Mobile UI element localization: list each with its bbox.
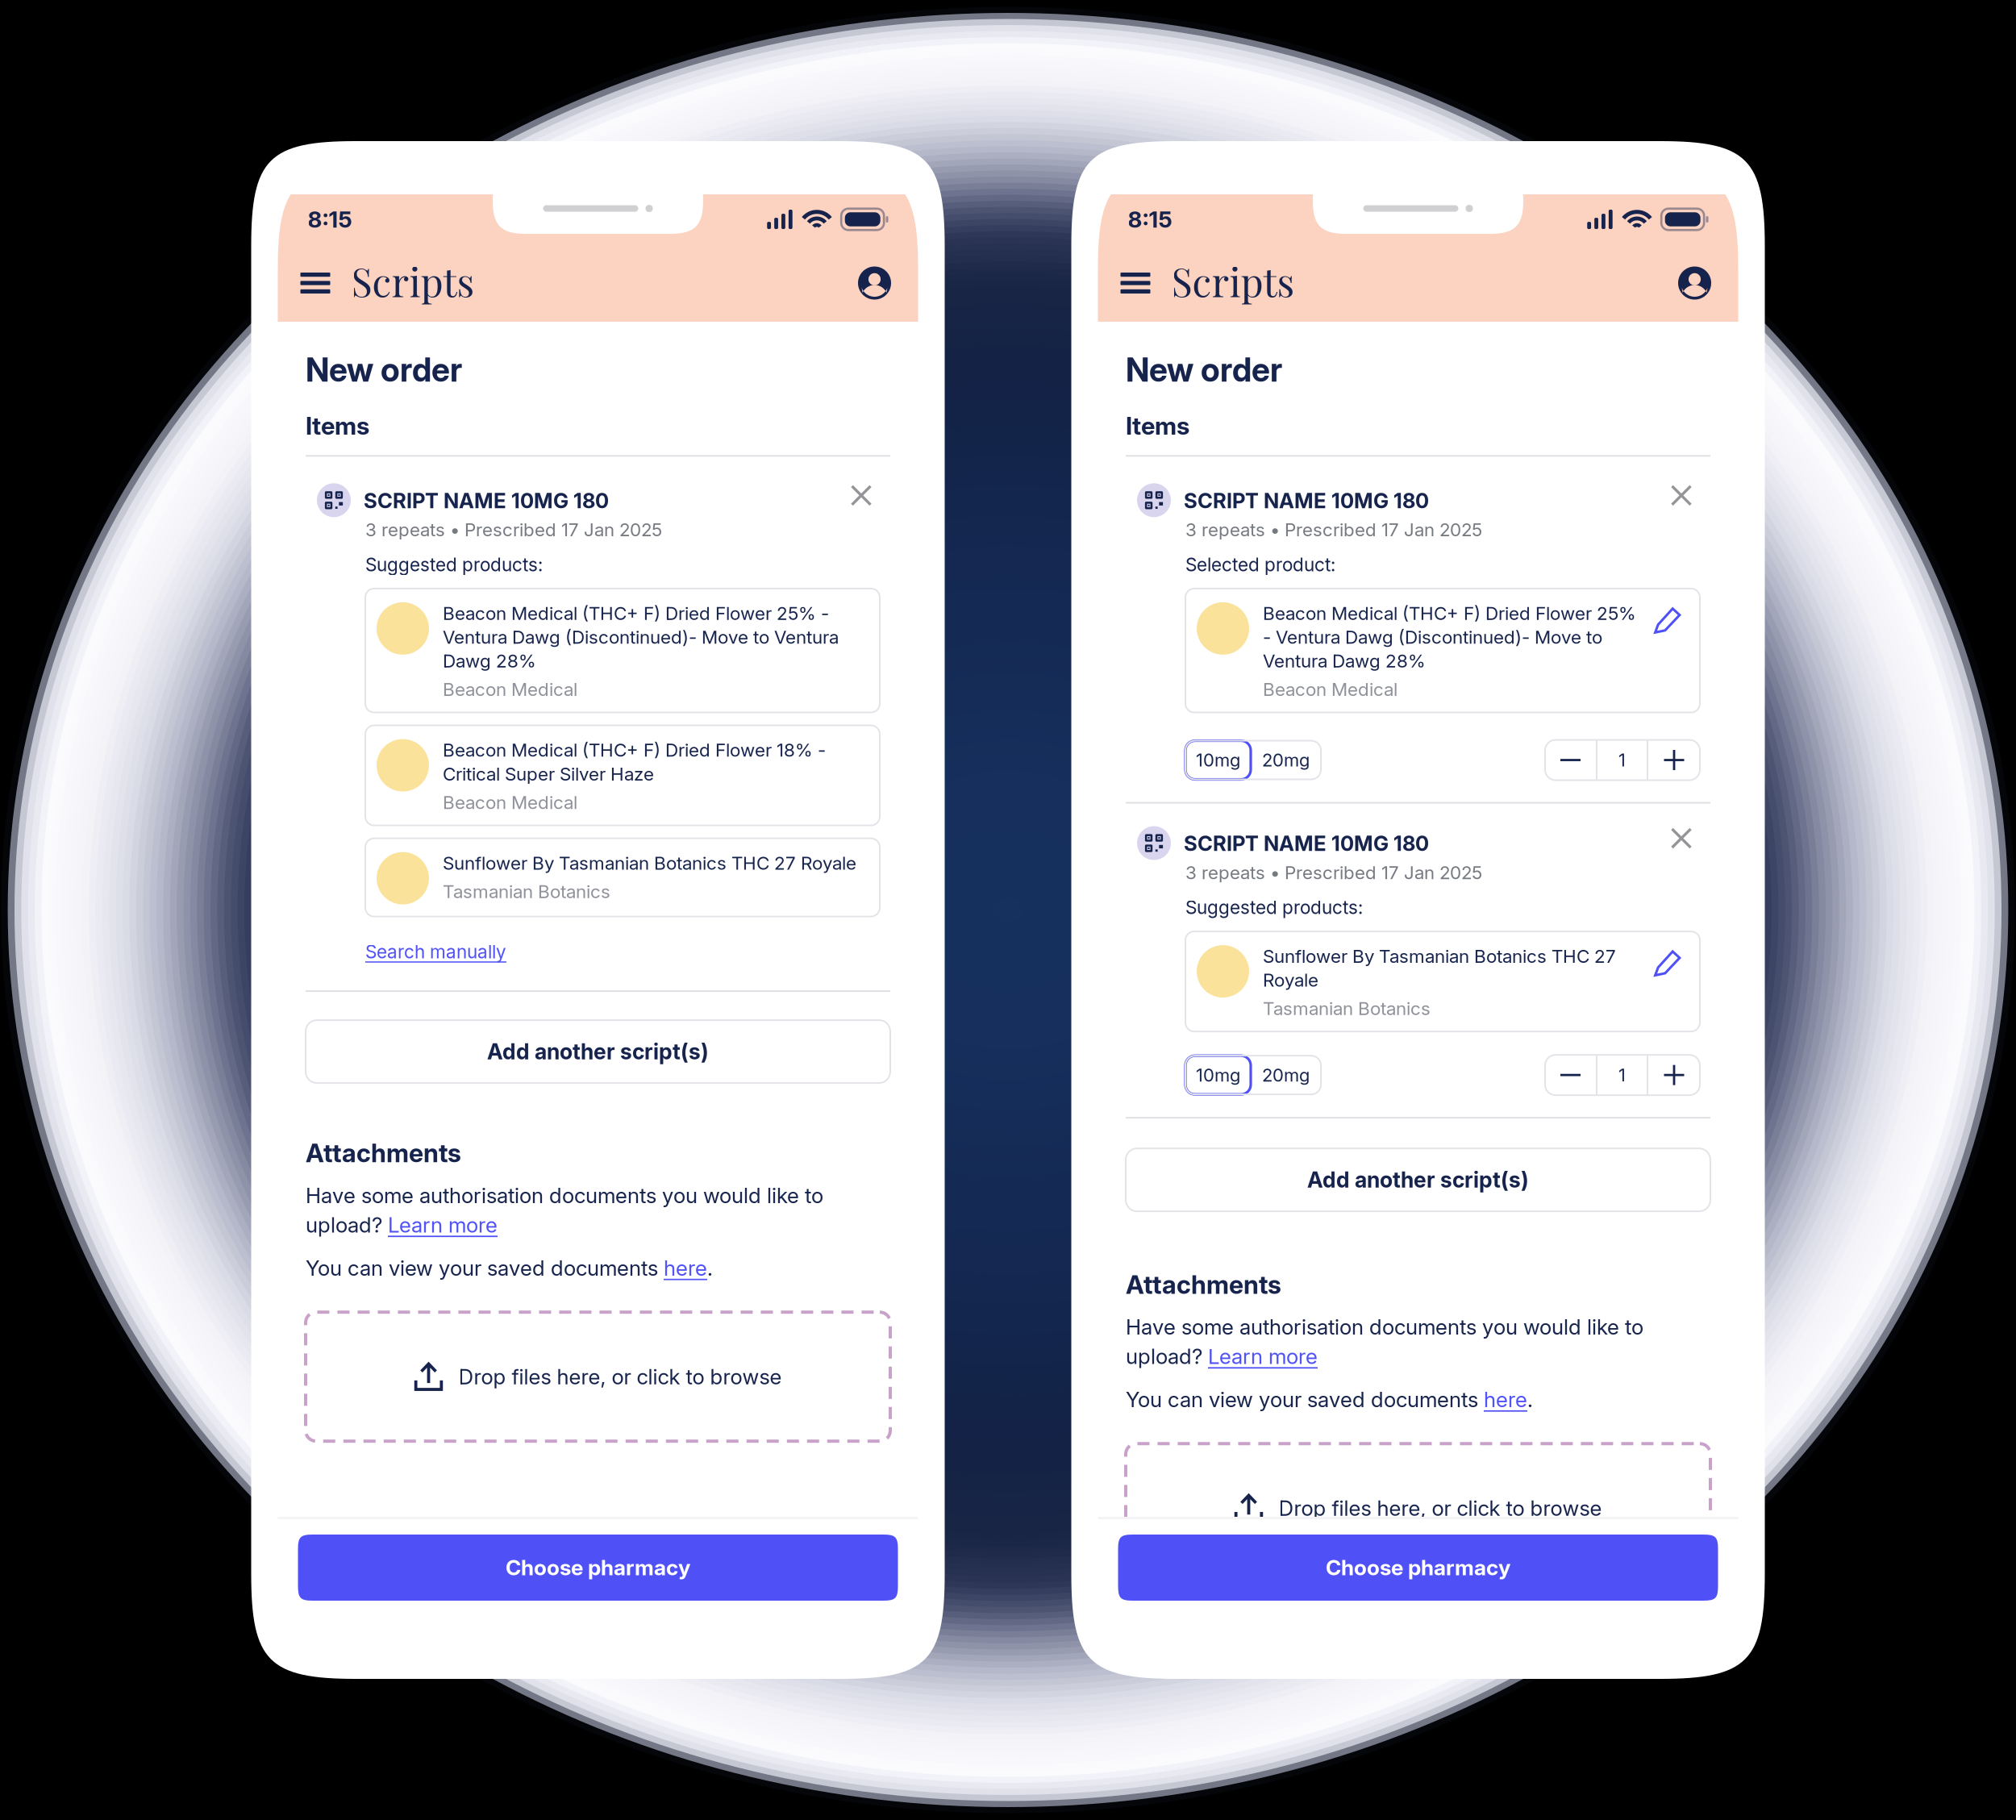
staticText: Scripts xyxy=(1171,255,1295,307)
staticText: Add another script(s) xyxy=(487,1039,709,1065)
button[interactable]: 20mg xyxy=(1251,741,1321,779)
button[interactable]: Add another script(s) xyxy=(1126,1148,1710,1211)
staticText: Attachments xyxy=(1126,1269,1281,1300)
button[interactable]: Change product xyxy=(1648,945,1685,982)
staticText: Learn more xyxy=(1208,1344,1318,1369)
staticText: Add another script(s) xyxy=(1307,1167,1529,1193)
staticText: 20mg xyxy=(1262,749,1310,771)
staticText: 10mg xyxy=(1196,749,1240,771)
staticText: 1 xyxy=(1618,749,1626,771)
button[interactable]: 10mg xyxy=(1185,1056,1251,1094)
staticText: Beacon Medical (THC+ F) Dried Flower 18%… xyxy=(443,739,826,785)
staticText: upload? xyxy=(306,1212,388,1238)
button[interactable]: Add another script(s) xyxy=(306,1020,890,1083)
staticText: Suggested products: xyxy=(1185,896,1363,918)
button[interactable]: Drop files here, or click to browse xyxy=(1126,1444,1710,1573)
staticText: Selected product: xyxy=(1185,553,1335,576)
staticText: Beacon Medical xyxy=(443,791,577,813)
staticText: 3 repeats • Prescribed 17 Jan 2025 xyxy=(365,519,662,541)
button[interactable]: Increase quantity xyxy=(1648,740,1700,780)
staticText: Drop files here, or click to browse xyxy=(458,1364,782,1389)
button[interactable]: Choose pharmacy xyxy=(298,1535,898,1601)
button[interactable]: Choose pharmacy xyxy=(1118,1535,1718,1601)
staticText: 10mg xyxy=(1196,1064,1240,1086)
staticText: 20mg xyxy=(1262,1064,1310,1086)
button[interactable]: Menu xyxy=(293,257,337,309)
button[interactable]: Change product xyxy=(1648,602,1685,639)
staticText: New order xyxy=(1126,350,1282,389)
staticText: Sunflower By Tasmanian Botanics THC 27 R… xyxy=(443,852,856,874)
staticText: Items xyxy=(1126,411,1189,441)
staticText: Beacon Medical xyxy=(443,678,577,700)
button[interactable]: Account xyxy=(851,260,898,306)
button[interactable]: Increase quantity xyxy=(1648,1055,1700,1095)
staticText: Beacon Medical (THC+ F) Dried Flower 25%… xyxy=(1263,602,1636,672)
button[interactable]: here xyxy=(1484,1387,1527,1412)
staticText: Tasmanian Botanics xyxy=(1263,997,1431,1019)
button[interactable]: 10mg xyxy=(1185,741,1251,779)
staticText: SCRIPT NAME 10MG 180 xyxy=(1184,831,1429,856)
button[interactable]: Remove script xyxy=(842,476,881,515)
button[interactable]: Remove script xyxy=(1662,476,1701,515)
staticText: 3 repeats • Prescribed 17 Jan 2025 xyxy=(1185,862,1482,883)
staticText: . xyxy=(707,1255,713,1281)
button[interactable]: Decrease quantity xyxy=(1545,740,1596,780)
button[interactable]: 20mg xyxy=(1251,1056,1321,1094)
staticText: Scripts xyxy=(351,255,475,307)
staticText: Beacon Medical (THC+ F) Dried Flower 25%… xyxy=(443,602,839,672)
button[interactable]: Decrease quantity xyxy=(1545,1055,1596,1095)
button[interactable]: Learn more xyxy=(1208,1344,1318,1369)
staticText: SCRIPT NAME 10MG 180 xyxy=(364,488,609,513)
staticText: SCRIPT NAME 10MG 180 xyxy=(1184,488,1429,513)
staticText: 8:15 xyxy=(308,206,352,233)
staticText: 3 repeats • Prescribed 17 Jan 2025 xyxy=(1185,519,1482,541)
button[interactable]: Remove script xyxy=(1662,819,1701,858)
button[interactable]: Drop files here, or click to browse xyxy=(306,1312,890,1441)
staticText: Items xyxy=(306,411,369,441)
staticText: New order xyxy=(306,350,462,389)
staticText: here xyxy=(664,1255,707,1281)
staticText: You can view your saved documents xyxy=(1126,1387,1484,1412)
staticText: Tasmanian Botanics xyxy=(443,880,610,903)
button[interactable]: Learn more xyxy=(388,1212,498,1238)
button[interactable]: Account xyxy=(1671,260,1718,306)
staticText: Sunflower By Tasmanian Botanics THC 27 R… xyxy=(1263,945,1616,991)
staticText: Have some authorisation documents you wo… xyxy=(306,1183,823,1208)
staticText: Choose pharmacy xyxy=(506,1555,690,1580)
staticText: Search manually xyxy=(365,941,506,963)
button[interactable]: Search manually xyxy=(365,941,506,963)
staticText: Beacon Medical xyxy=(1263,678,1397,700)
staticText: Choose pharmacy xyxy=(1326,1555,1510,1580)
staticText: Drop files here, or click to browse xyxy=(1279,1496,1602,1521)
button[interactable]: here xyxy=(664,1255,707,1281)
staticText: 1 xyxy=(1618,1064,1626,1086)
staticText: Suggested products: xyxy=(365,553,543,576)
staticText: here xyxy=(1484,1387,1527,1412)
button[interactable]: Menu xyxy=(1113,257,1158,309)
staticText: You can view your saved documents xyxy=(306,1255,664,1281)
staticText: upload? xyxy=(1126,1344,1208,1369)
staticText: Attachments xyxy=(306,1138,461,1168)
staticText: Learn more xyxy=(388,1212,498,1238)
staticText: 8:15 xyxy=(1128,206,1172,233)
staticText: Have some authorisation documents you wo… xyxy=(1126,1314,1643,1340)
staticText: . xyxy=(1527,1387,1533,1412)
